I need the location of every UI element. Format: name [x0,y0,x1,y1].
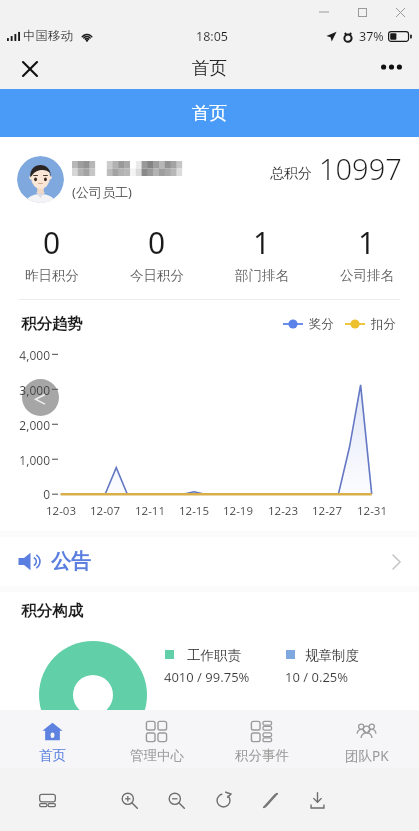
button[interactable]: Zoom in [116,787,142,813]
button[interactable]: 团队PK [314,710,419,768]
staticText: 部门排名 [235,267,289,284]
staticText: 12-03 [36,503,86,519]
button[interactable]: Download [304,787,330,813]
staticText: 1,000 [0,452,50,468]
staticText: 管理中心 [130,747,184,764]
staticText: 奖分 [309,316,334,332]
staticText: 12-19 [213,503,263,519]
staticText: 1 [253,222,271,263]
button[interactable]: 首页 [0,710,104,768]
staticText: 0 [0,486,50,502]
staticText: 10 / 0.25% [285,668,349,686]
staticText: 12-31 [347,503,397,519]
staticText: 4,000 [0,347,50,363]
staticText: 扣分 [371,316,396,332]
staticText: 3,000 [0,382,50,398]
staticText: 工作职责 [187,647,241,664]
button[interactable]: Edit [257,787,283,813]
staticText: 12-15 [169,503,219,519]
button[interactable]: Reload [210,787,236,813]
staticText: 37% [359,28,384,45]
staticText: 规章制度 [305,647,359,664]
staticText: 10997 [319,149,402,188]
staticText: 18:05 [196,28,228,45]
button[interactable]: Zoom out [163,787,189,813]
button[interactable]: Back [22,379,59,416]
staticText: 昨日积分 [25,267,79,284]
staticText: 首页 [192,57,227,79]
button[interactable]: 0 [104,210,209,299]
button[interactable]: 积分事件 [209,710,314,768]
staticText: 12-07 [80,503,130,519]
staticText: 中国移动 [23,28,73,44]
staticText: 总积分 [270,165,312,183]
button[interactable]: 首页 [0,89,419,137]
staticText: 2,000 [0,417,50,433]
button[interactable]: 1 [314,210,419,299]
staticText: 12-27 [302,503,352,519]
staticText: 公告 [51,549,91,574]
button[interactable]: Close window [381,0,419,24]
staticText: 公司排名 [340,267,394,284]
staticText: 积分趋势 [21,314,83,334]
button[interactable]: 管理中心 [104,710,209,768]
button[interactable]: 1 [209,210,314,299]
staticText: 首页 [192,102,227,124]
staticText: 0 [148,222,166,263]
staticText: 0 [43,222,61,263]
staticText: 12-23 [258,503,308,519]
button[interactable]: More options [372,48,410,86]
staticText: 1 [358,222,376,263]
button[interactable]: Minimize [305,0,343,24]
staticText: 4010 / 99.75% [164,668,250,686]
staticText: 积分构成 [21,601,83,621]
staticText: 积分事件 [235,747,289,764]
button[interactable]: 0 [0,210,104,299]
button[interactable]: Maximize [343,0,381,24]
staticText: 12-11 [125,503,175,519]
staticText: 首页 [39,747,66,764]
staticText: 今日积分 [130,267,184,284]
button[interactable]: Layout [34,787,60,813]
button[interactable]: Close [11,50,49,88]
staticText: (公司员工) [72,183,132,201]
button[interactable]: 公告 [0,537,419,586]
staticText: 团队PK [345,747,389,765]
